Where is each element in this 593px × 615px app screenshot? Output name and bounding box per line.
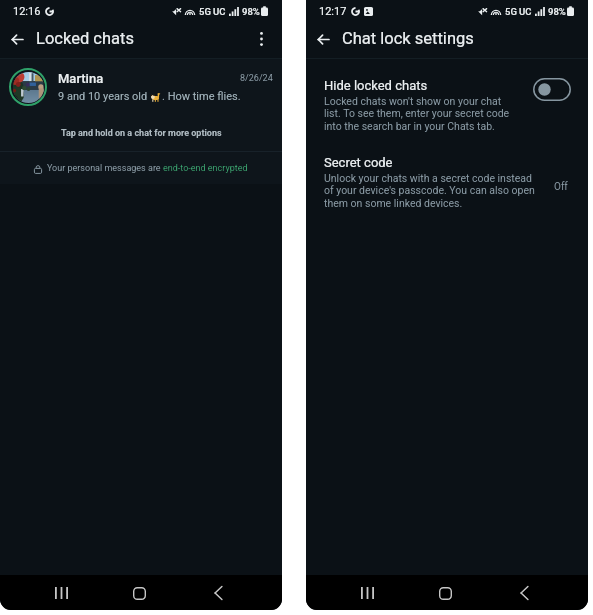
staticText: Locked chats won't show on your chat lis…	[324, 95, 512, 133]
staticText: Off	[554, 181, 568, 193]
button[interactable]: Hide locked chats toggle	[533, 78, 571, 101]
staticText: Secret code	[324, 155, 393, 170]
button[interactable]: Back	[506, 579, 542, 607]
staticText: 12:17	[319, 5, 347, 18]
staticText: 5G	[505, 6, 517, 17]
staticText: 9 and 10 years old	[58, 90, 150, 103]
button[interactable]: Back	[4, 26, 30, 52]
staticText: Your personal messages are	[47, 163, 163, 174]
staticText: 12:16	[13, 5, 41, 18]
staticText: . How time flies.	[162, 90, 241, 103]
button[interactable]: Recent apps	[349, 579, 385, 607]
button[interactable]: More options	[248, 26, 274, 52]
button[interactable]: Hide locked chats	[306, 59, 588, 149]
staticText: UC	[213, 6, 226, 17]
staticText: 98%	[548, 6, 566, 17]
button[interactable]: Back	[200, 579, 236, 607]
staticText: Locked chats	[36, 29, 134, 48]
staticText: 98%	[242, 6, 260, 17]
staticText: end-to-end encrypted	[163, 163, 248, 174]
button[interactable]: Home	[427, 579, 463, 607]
button[interactable]: Home	[121, 579, 157, 607]
staticText: Tap and hold on a chat for more options	[61, 128, 222, 139]
button[interactable]: Martina	[0, 59, 282, 115]
staticText: 5G	[199, 6, 211, 17]
staticText: Martina	[58, 71, 104, 86]
staticText: 8/26/24	[240, 73, 273, 84]
staticText: Hide locked chats	[324, 78, 428, 93]
staticText: Unlock your chats with a secret code ins…	[324, 172, 536, 210]
staticText: UC	[519, 6, 532, 17]
button[interactable]: Recent apps	[43, 579, 79, 607]
button[interactable]: Secret code	[306, 147, 588, 231]
staticText: Chat lock settings	[342, 29, 474, 48]
button[interactable]: Back	[310, 26, 336, 52]
